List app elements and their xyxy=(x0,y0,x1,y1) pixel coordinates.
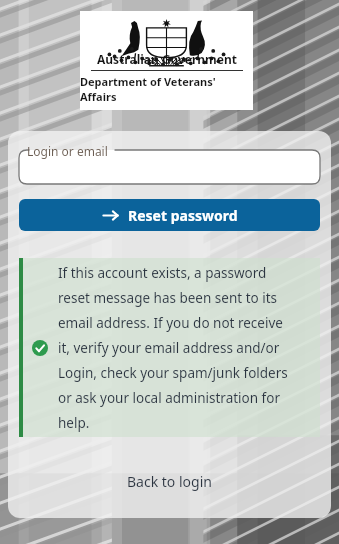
staticText: Australian Government xyxy=(97,51,237,67)
staticText: If this account exists, a password xyxy=(58,264,267,282)
staticText: Login or email xyxy=(27,143,108,159)
staticText: or ask your local administration for xyxy=(58,389,280,407)
staticText: help. xyxy=(58,414,90,432)
staticText: Back to login xyxy=(127,472,212,491)
staticText: it, verify your email address and/or xyxy=(58,339,280,357)
button[interactable] xyxy=(19,150,320,184)
button[interactable]: Reset password xyxy=(19,199,320,231)
staticText: email address. If you do not receive xyxy=(58,314,283,332)
staticText: Department of Veterans' Affairs xyxy=(80,74,253,104)
staticText: Login, check your spam/junk folders xyxy=(58,364,288,382)
button[interactable]: Back to login xyxy=(8,464,331,498)
staticText: Reset password xyxy=(128,206,238,225)
staticText: reset message has been sent to its xyxy=(58,289,278,307)
